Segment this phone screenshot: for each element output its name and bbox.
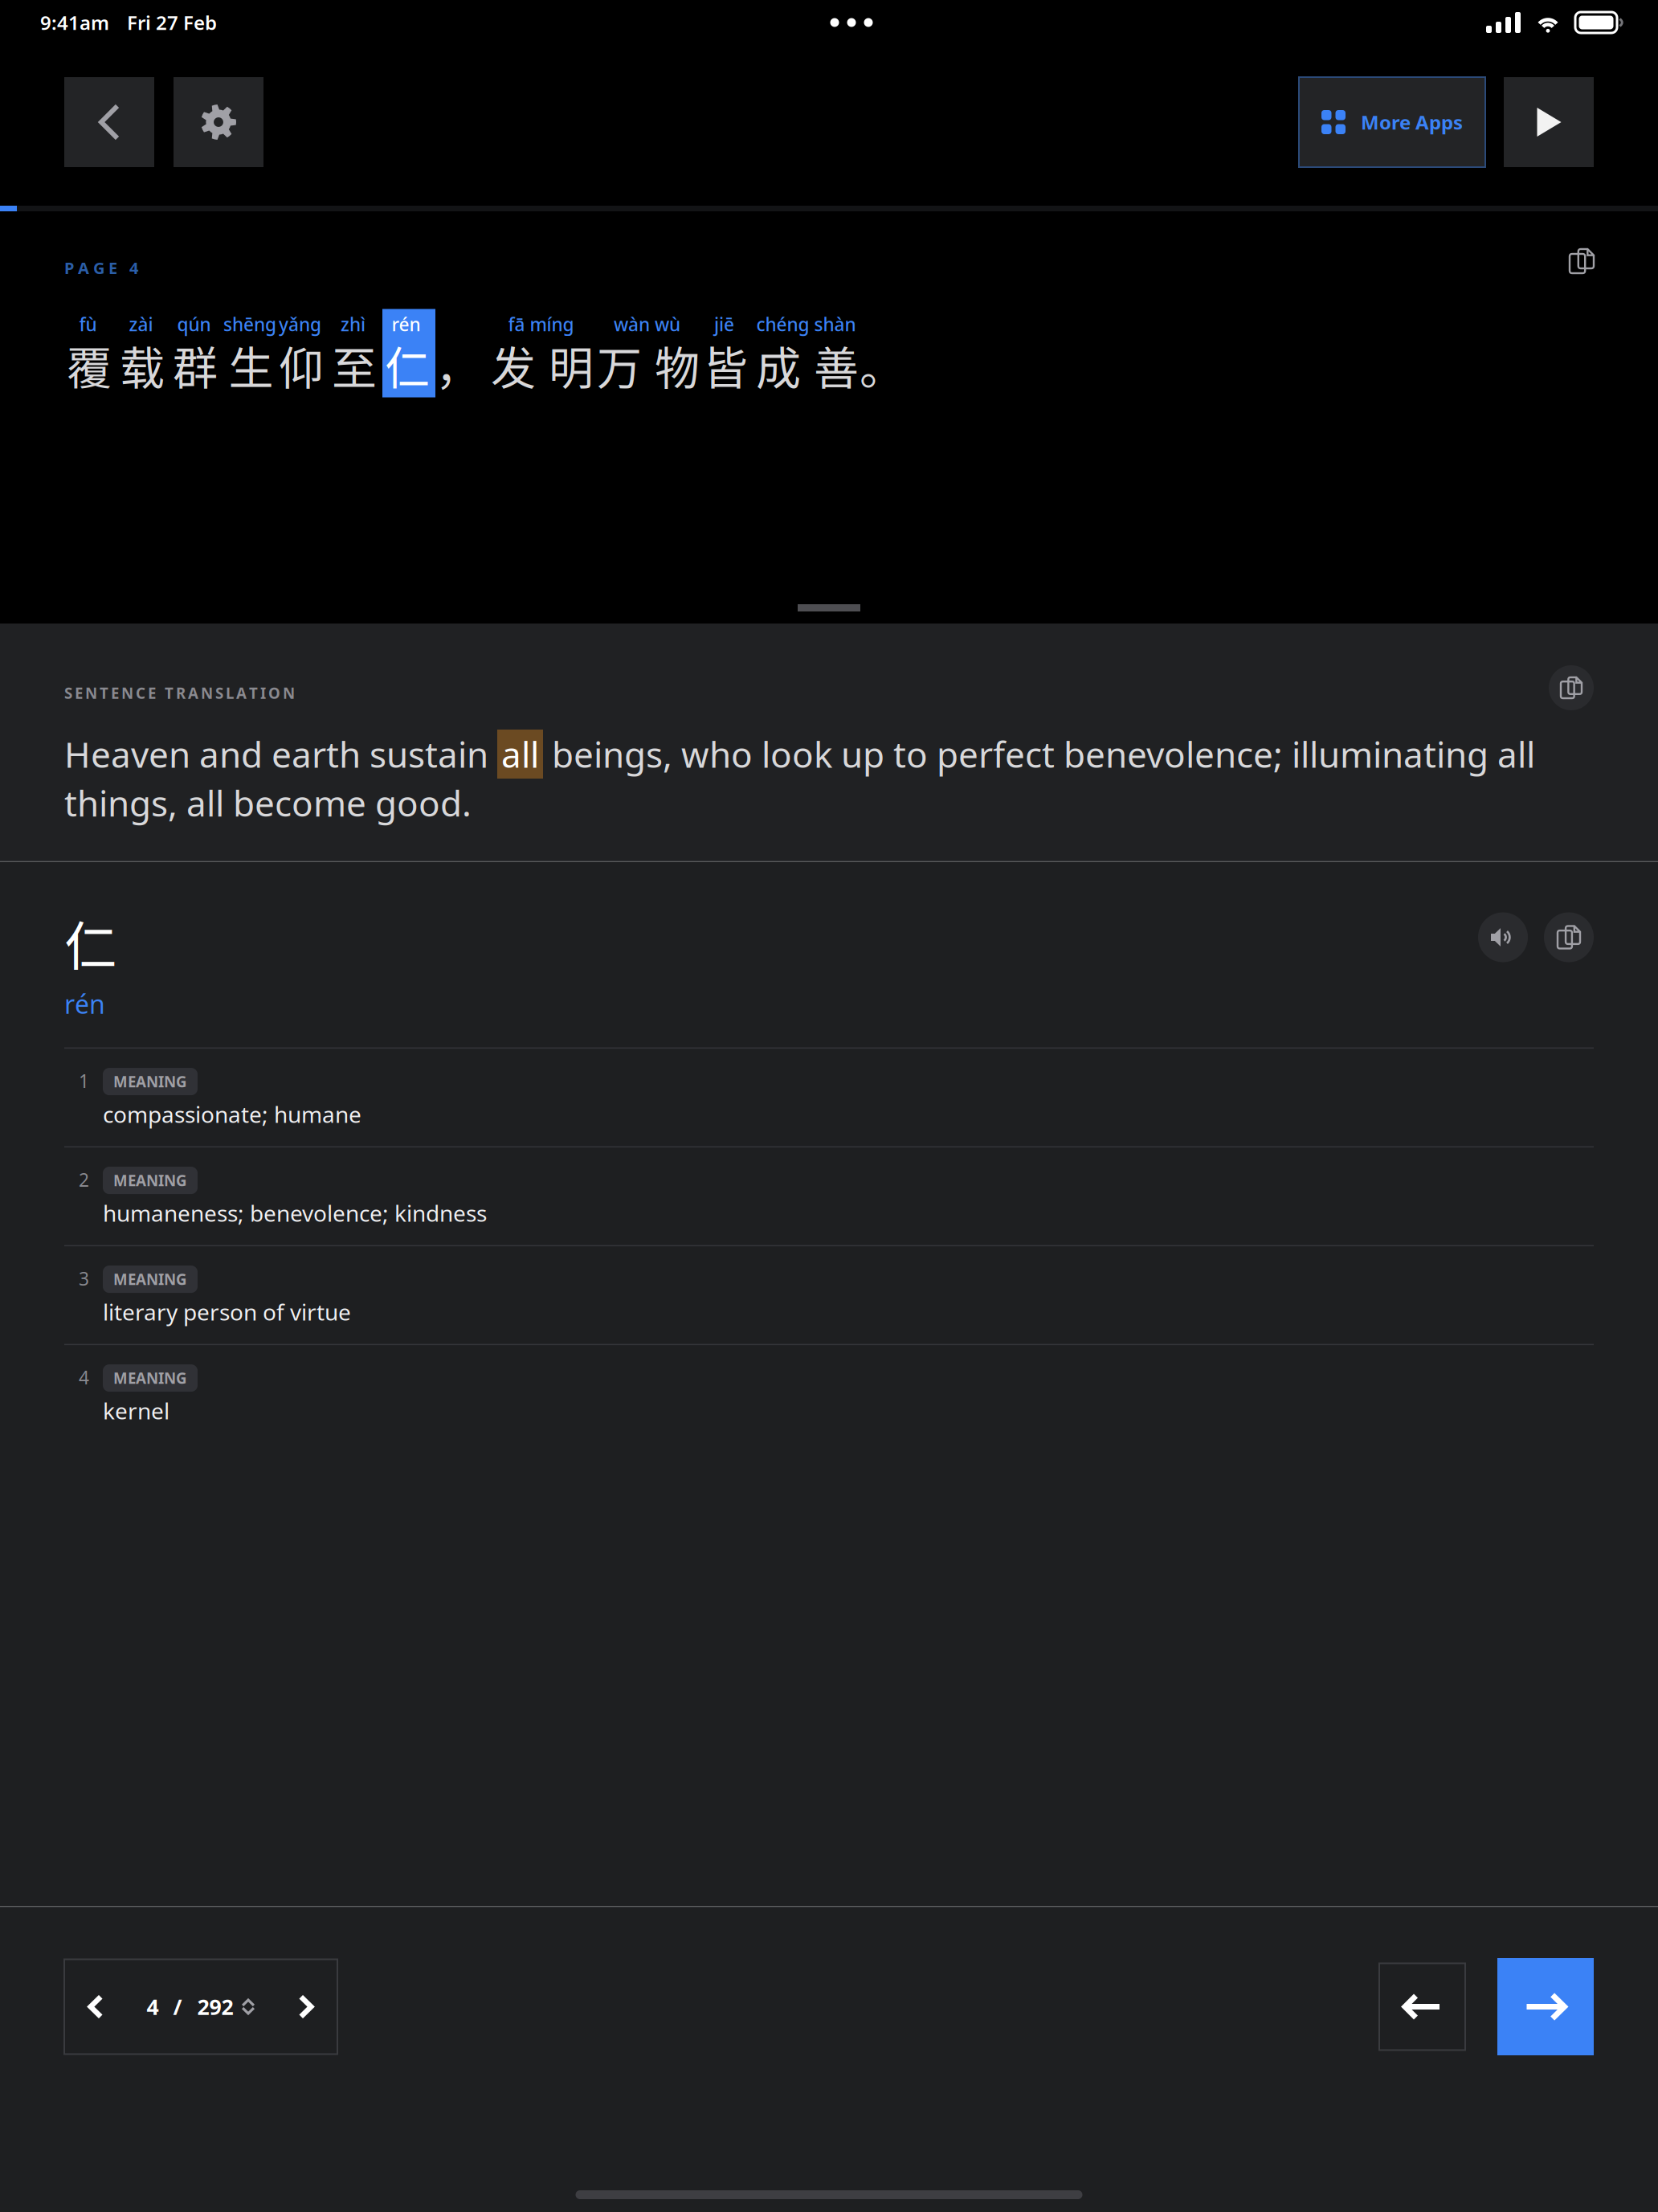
button[interactable]: Previous page bbox=[64, 1959, 127, 2054]
staticText: jiē bbox=[714, 312, 734, 336]
staticText: 仰 bbox=[279, 332, 324, 397]
staticText: compassionate; humane bbox=[103, 1099, 361, 1129]
staticText: 3 bbox=[79, 1266, 89, 1291]
staticText: all bbox=[501, 731, 539, 778]
staticText: 成善 bbox=[756, 332, 859, 397]
staticText: zài bbox=[129, 312, 153, 336]
button[interactable]: Next page bbox=[275, 1959, 337, 2054]
button[interactable]: Next sentence bbox=[1497, 1958, 1594, 2055]
staticText: 覆 bbox=[67, 332, 112, 397]
staticText: P A G E 4 bbox=[64, 257, 138, 278]
staticText: fā míng bbox=[508, 312, 574, 336]
staticText: rén bbox=[392, 312, 421, 336]
staticText: Heaven and earth sustain bbox=[64, 731, 497, 778]
button[interactable]: Play pronunciation bbox=[1478, 912, 1528, 962]
staticText: 。 bbox=[860, 332, 905, 397]
staticText: 皆 bbox=[703, 332, 748, 397]
staticText: humaneness; benevolence; kindness bbox=[103, 1198, 487, 1228]
button[interactable]: Copy sentence bbox=[1570, 249, 1594, 273]
staticText: 仁 bbox=[385, 332, 430, 397]
staticText: beings, who look up to perfect benevolen… bbox=[543, 731, 1535, 778]
staticText: MEANING bbox=[113, 1072, 187, 1092]
staticText: 生 bbox=[229, 332, 274, 397]
staticText: 9:41am bbox=[40, 10, 109, 35]
staticText: fù bbox=[79, 312, 97, 336]
button[interactable]: More Apps bbox=[1299, 77, 1485, 167]
staticText: MEANING bbox=[113, 1269, 187, 1289]
button[interactable]: Settings bbox=[174, 77, 263, 167]
staticText: 仁 bbox=[64, 904, 116, 980]
staticText: 至 bbox=[332, 332, 377, 397]
staticText: 1 bbox=[79, 1069, 89, 1093]
staticText: literary person of virtue bbox=[103, 1297, 351, 1327]
staticText: 群 bbox=[173, 332, 218, 397]
staticText: 载 bbox=[120, 332, 165, 397]
staticText: 2 bbox=[79, 1168, 89, 1192]
staticText: zhì bbox=[341, 312, 365, 336]
staticText: chéng shàn bbox=[756, 312, 856, 336]
button[interactable]: Back bbox=[64, 77, 154, 167]
staticText: shēng bbox=[223, 312, 276, 336]
staticText: 4 bbox=[147, 1992, 159, 2021]
staticText: qún bbox=[177, 312, 211, 336]
staticText: More Apps bbox=[1361, 109, 1463, 135]
button[interactable]: Copy word bbox=[1544, 912, 1594, 962]
staticText: yǎng bbox=[279, 312, 321, 336]
staticText: MEANING bbox=[113, 1170, 187, 1190]
staticText: S E N T E N C E T R A N S L A T I O N bbox=[64, 683, 297, 703]
button[interactable]: Play bbox=[1504, 77, 1594, 167]
staticText: 万物 bbox=[597, 332, 700, 397]
staticText: wàn wù bbox=[614, 312, 680, 336]
staticText: rén bbox=[64, 987, 105, 1021]
button[interactable]: Previous sentence bbox=[1379, 1963, 1465, 2050]
staticText: 发明 bbox=[491, 332, 594, 397]
staticText: / bbox=[173, 1992, 182, 2021]
staticText: MEANING bbox=[113, 1368, 187, 1388]
staticText: ， bbox=[435, 332, 480, 397]
staticText: Fri 27 Feb bbox=[127, 10, 217, 35]
staticText: 292 bbox=[197, 1992, 233, 2021]
staticText: things, all become good. bbox=[64, 779, 472, 826]
button[interactable]: Copy translation bbox=[1549, 665, 1594, 710]
staticText: kernel bbox=[103, 1396, 169, 1426]
staticText: 4 bbox=[79, 1365, 89, 1389]
